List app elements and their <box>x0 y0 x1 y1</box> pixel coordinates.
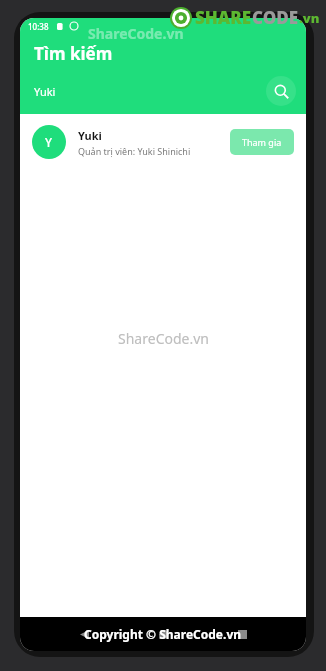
button[interactable]: Recents <box>227 619 257 649</box>
staticText: Tìm kiếm <box>34 42 113 65</box>
staticText: Tham gia <box>242 136 282 148</box>
button[interactable]: Y <box>20 114 306 170</box>
staticText: Yuki <box>78 128 102 143</box>
staticText: Yuki <box>34 84 56 99</box>
staticText: .vn <box>299 9 320 27</box>
button[interactable]: Home <box>148 619 178 649</box>
staticText: Y <box>45 134 53 150</box>
staticText: ShareCode.vn <box>118 329 209 348</box>
staticText: ShareCode.vn <box>88 24 184 43</box>
staticText: SHARE <box>195 6 252 29</box>
staticText: Copyright © ShareCode.vn <box>84 626 242 642</box>
button[interactable]: Back <box>69 619 99 649</box>
button[interactable]: Search <box>266 76 296 106</box>
staticText: Quản trị viên: Yuki Shinichi <box>78 145 191 157</box>
staticText: CODE <box>252 6 299 29</box>
button[interactable]: Tham gia <box>230 129 294 155</box>
staticText: 10:38 <box>28 21 49 32</box>
